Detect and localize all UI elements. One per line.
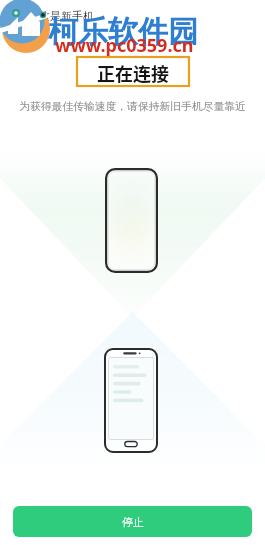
staticText: 停止 <box>122 515 144 529</box>
staticText: 这是新手机 <box>39 9 94 23</box>
staticText: 柯乐软件园 <box>48 13 198 51</box>
staticText: 正在连接 <box>97 60 169 86</box>
button[interactable]: 停止 <box>13 506 252 537</box>
staticText: 为获得最佳传输速度，请保持新旧手机尽量靠近 <box>19 100 246 114</box>
staticText: www.pc0359.cn <box>55 33 194 58</box>
